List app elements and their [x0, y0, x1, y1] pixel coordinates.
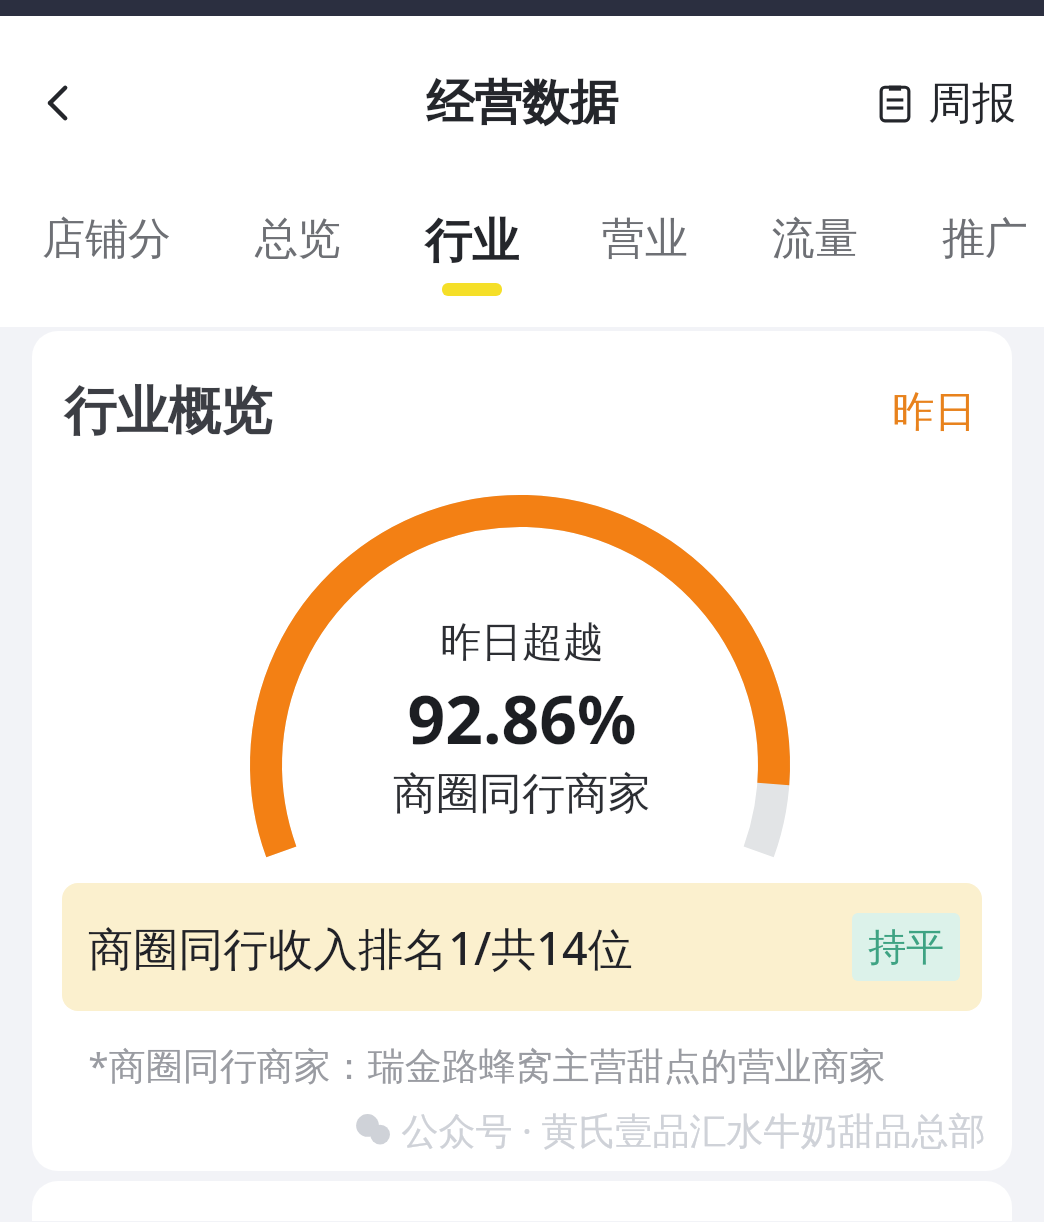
button[interactable]: 行业 [421, 212, 523, 296]
staticText: 流量 [772, 212, 858, 266]
staticText: 营业 [602, 212, 688, 266]
button[interactable]: 营业 [598, 212, 692, 278]
button[interactable]: 推广 [938, 212, 1032, 278]
staticText: 行业概览 [64, 379, 272, 445]
staticText: 总览 [255, 212, 341, 266]
staticText: 公众号 · 黄氏壹品汇水牛奶甜品总部 [401, 1104, 986, 1155]
button[interactable]: 周报 [868, 68, 1022, 139]
button[interactable]: 昨日 [886, 380, 982, 445]
staticText: 商圈同行收入排名1/共14位 [88, 917, 633, 978]
button[interactable]: Back [22, 67, 94, 139]
button[interactable]: 商圈同行收入排名1/共14位 [62, 883, 982, 1011]
staticText: 92.86% [407, 673, 637, 763]
staticText: 店铺分 [42, 212, 171, 266]
staticText: 推广 [942, 212, 1028, 266]
staticText: 经营数据 [426, 73, 618, 133]
staticText: 持平 [868, 923, 944, 971]
staticText: 昨日超越 [440, 617, 604, 669]
staticText: 昨日 [892, 386, 976, 439]
staticText: 行业 [425, 212, 519, 271]
staticText: 周报 [928, 76, 1016, 131]
button[interactable]: 流量 [768, 212, 862, 278]
button[interactable]: 店铺分 [38, 212, 175, 278]
staticText: 商圈同行商家 [393, 767, 651, 821]
staticText: *商圈同行商家：瑞金路蜂窝主营甜点的营业商家 [88, 1039, 886, 1090]
button[interactable]: 总览 [251, 212, 345, 278]
